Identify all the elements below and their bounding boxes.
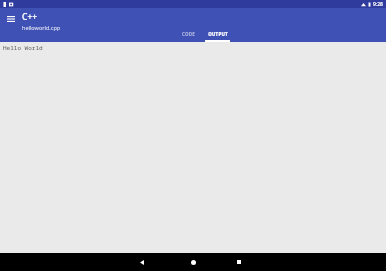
button[interactable]: Recent apps	[230, 253, 248, 271]
staticText: CODE	[182, 31, 195, 37]
button[interactable]: Back	[133, 253, 151, 271]
staticText: Hello World	[3, 44, 43, 52]
staticText: OUTPUT	[208, 31, 228, 37]
button[interactable]: Open navigation drawer	[4, 12, 18, 26]
button[interactable]: Home	[184, 253, 202, 271]
staticText: helloworld.cpp	[22, 24, 61, 31]
button[interactable]: CODE	[176, 31, 201, 42]
staticText: C++	[22, 11, 38, 23]
staticText: 9:28	[373, 1, 383, 8]
button[interactable]: OUTPUT	[205, 31, 230, 42]
